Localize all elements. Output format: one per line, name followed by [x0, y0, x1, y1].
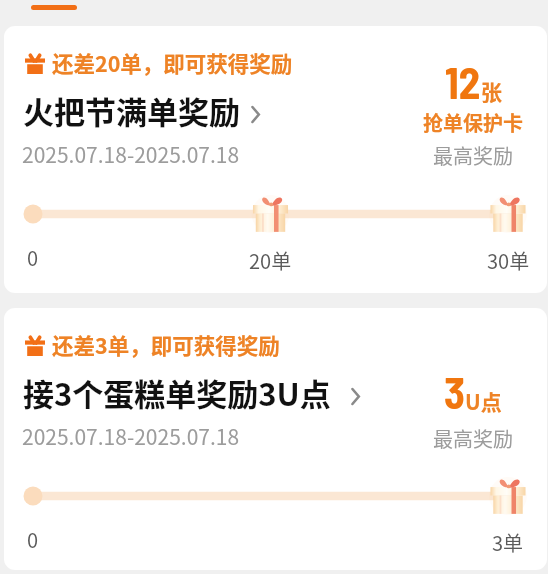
- staticText: 还差3单，即可获得奖励: [52, 329, 280, 360]
- staticText: 20单: [249, 246, 292, 275]
- staticText: 抢单保护卡: [423, 108, 523, 137]
- staticText: 最高奖励: [433, 424, 513, 453]
- button[interactable]: 还差3单，即可获得奖励: [4, 308, 547, 570]
- staticText: 还差20单，即可获得奖励: [52, 47, 293, 78]
- staticText: 3单: [492, 528, 524, 557]
- other: Open reward detail: [350, 388, 361, 405]
- staticText: 张: [481, 76, 502, 106]
- staticText: 0: [27, 525, 39, 554]
- other: Open reward detail: [250, 106, 261, 123]
- staticText: 30单: [487, 246, 530, 275]
- staticText: 接3个蛋糕单奖励3U点: [23, 370, 331, 415]
- staticText: 最高奖励: [433, 141, 513, 170]
- staticText: 2025.07.18-2025.07.18: [22, 421, 240, 451]
- staticText: 0: [27, 243, 39, 272]
- staticText: 火把节满单奖励: [23, 88, 240, 133]
- button[interactable]: 还差20单，即可获得奖励: [4, 26, 547, 293]
- button[interactable]: Selected tab: [31, 5, 77, 10]
- staticText: 2025.07.18-2025.07.18: [22, 139, 240, 169]
- staticText: 3: [444, 366, 465, 418]
- staticText: U点: [465, 386, 502, 416]
- staticText: 12: [445, 56, 481, 108]
